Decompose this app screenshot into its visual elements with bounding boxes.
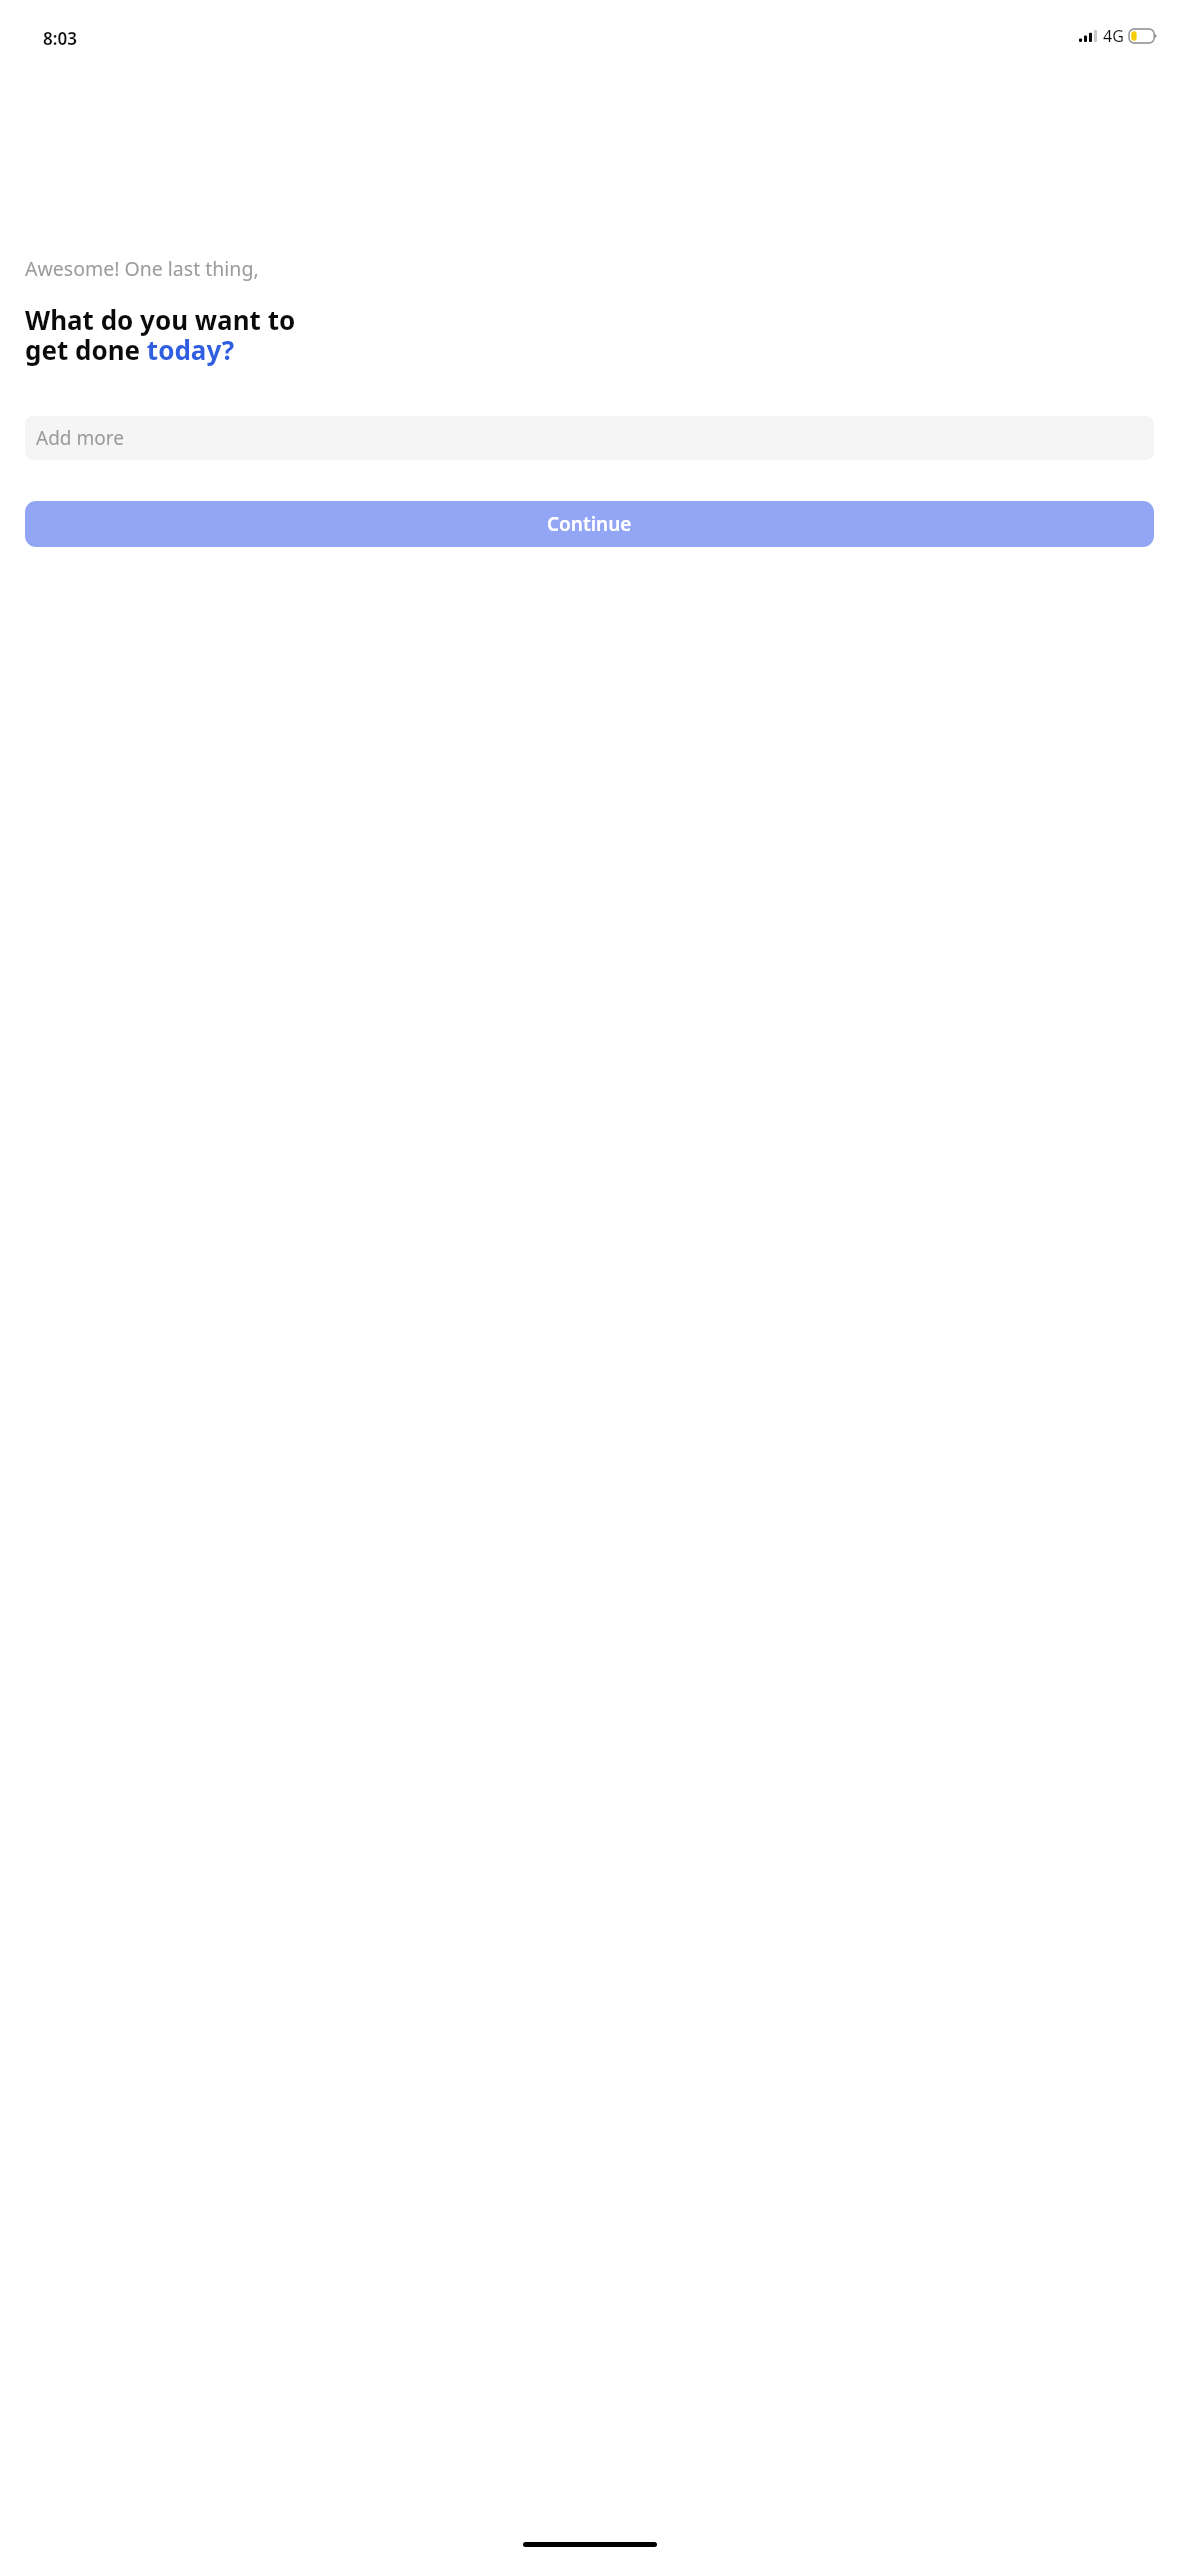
- button[interactable]: Continue: [25, 501, 1154, 547]
- staticText: What do you want to get done today?: [25, 302, 296, 367]
- staticText: 4G: [1103, 25, 1124, 47]
- button[interactable]: Add more: [25, 416, 1154, 460]
- staticText: Awesome! One last thing,: [25, 255, 259, 282]
- staticText: Continue: [547, 511, 632, 537]
- staticText: Add more: [36, 425, 124, 451]
- staticText: 8:03: [43, 27, 77, 50]
